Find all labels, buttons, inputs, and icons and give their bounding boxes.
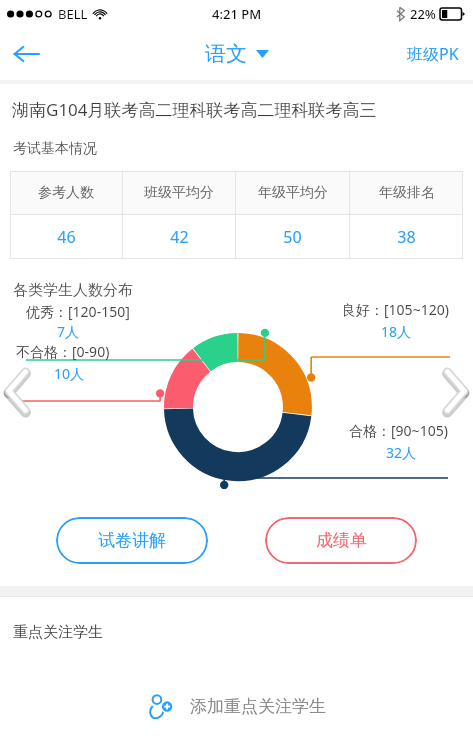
button[interactable]: Next [439, 365, 473, 417]
staticText: 22% [410, 5, 436, 23]
staticText: 18人 [381, 322, 412, 341]
staticText: 32人 [386, 443, 417, 462]
staticText: 年级排名 [379, 184, 435, 202]
button[interactable]: Previous [0, 365, 34, 417]
staticText: 7人 [57, 322, 80, 341]
staticText: 50 [283, 226, 302, 248]
staticText: 语文 [205, 41, 247, 67]
staticText: 合格：[90~105) [349, 421, 448, 440]
staticText: 湖南G104月联考高二理科联考高二理科联考高三 [12, 98, 377, 121]
staticText: 班级PK [407, 43, 459, 65]
button[interactable]: 班级PK [393, 31, 473, 77]
staticText: 参考人数 [38, 184, 94, 202]
staticText: 成绩单 [316, 530, 367, 551]
staticText: 班级平均分 [144, 184, 214, 202]
staticText: 年级平均分 [258, 184, 328, 202]
staticText: 38 [397, 226, 416, 248]
staticText: 4:21 PM [212, 5, 262, 23]
button[interactable]: 试卷讲解 [56, 517, 208, 564]
staticText: 良好：[105~120) [342, 300, 449, 319]
button[interactable]: Back [0, 28, 52, 80]
button[interactable]: 语文 [205, 41, 269, 67]
staticText: BELL [58, 5, 88, 23]
staticText: 不合格：[0-90) [16, 342, 110, 361]
staticText: 考试基本情况 [13, 140, 97, 158]
staticText: 46 [57, 226, 76, 248]
staticText: 优秀：[120-150] [26, 302, 130, 321]
staticText: 试卷讲解 [98, 530, 166, 551]
staticText: 添加重点关注学生 [190, 696, 326, 717]
staticText: 各类学生人数分布 [13, 281, 133, 300]
button[interactable]: 添加重点关注学生 [139, 684, 334, 728]
staticText: 10人 [54, 364, 85, 383]
staticText: 重点关注学生 [13, 623, 103, 642]
staticText: 42 [170, 226, 189, 248]
button[interactable]: 成绩单 [265, 517, 417, 564]
